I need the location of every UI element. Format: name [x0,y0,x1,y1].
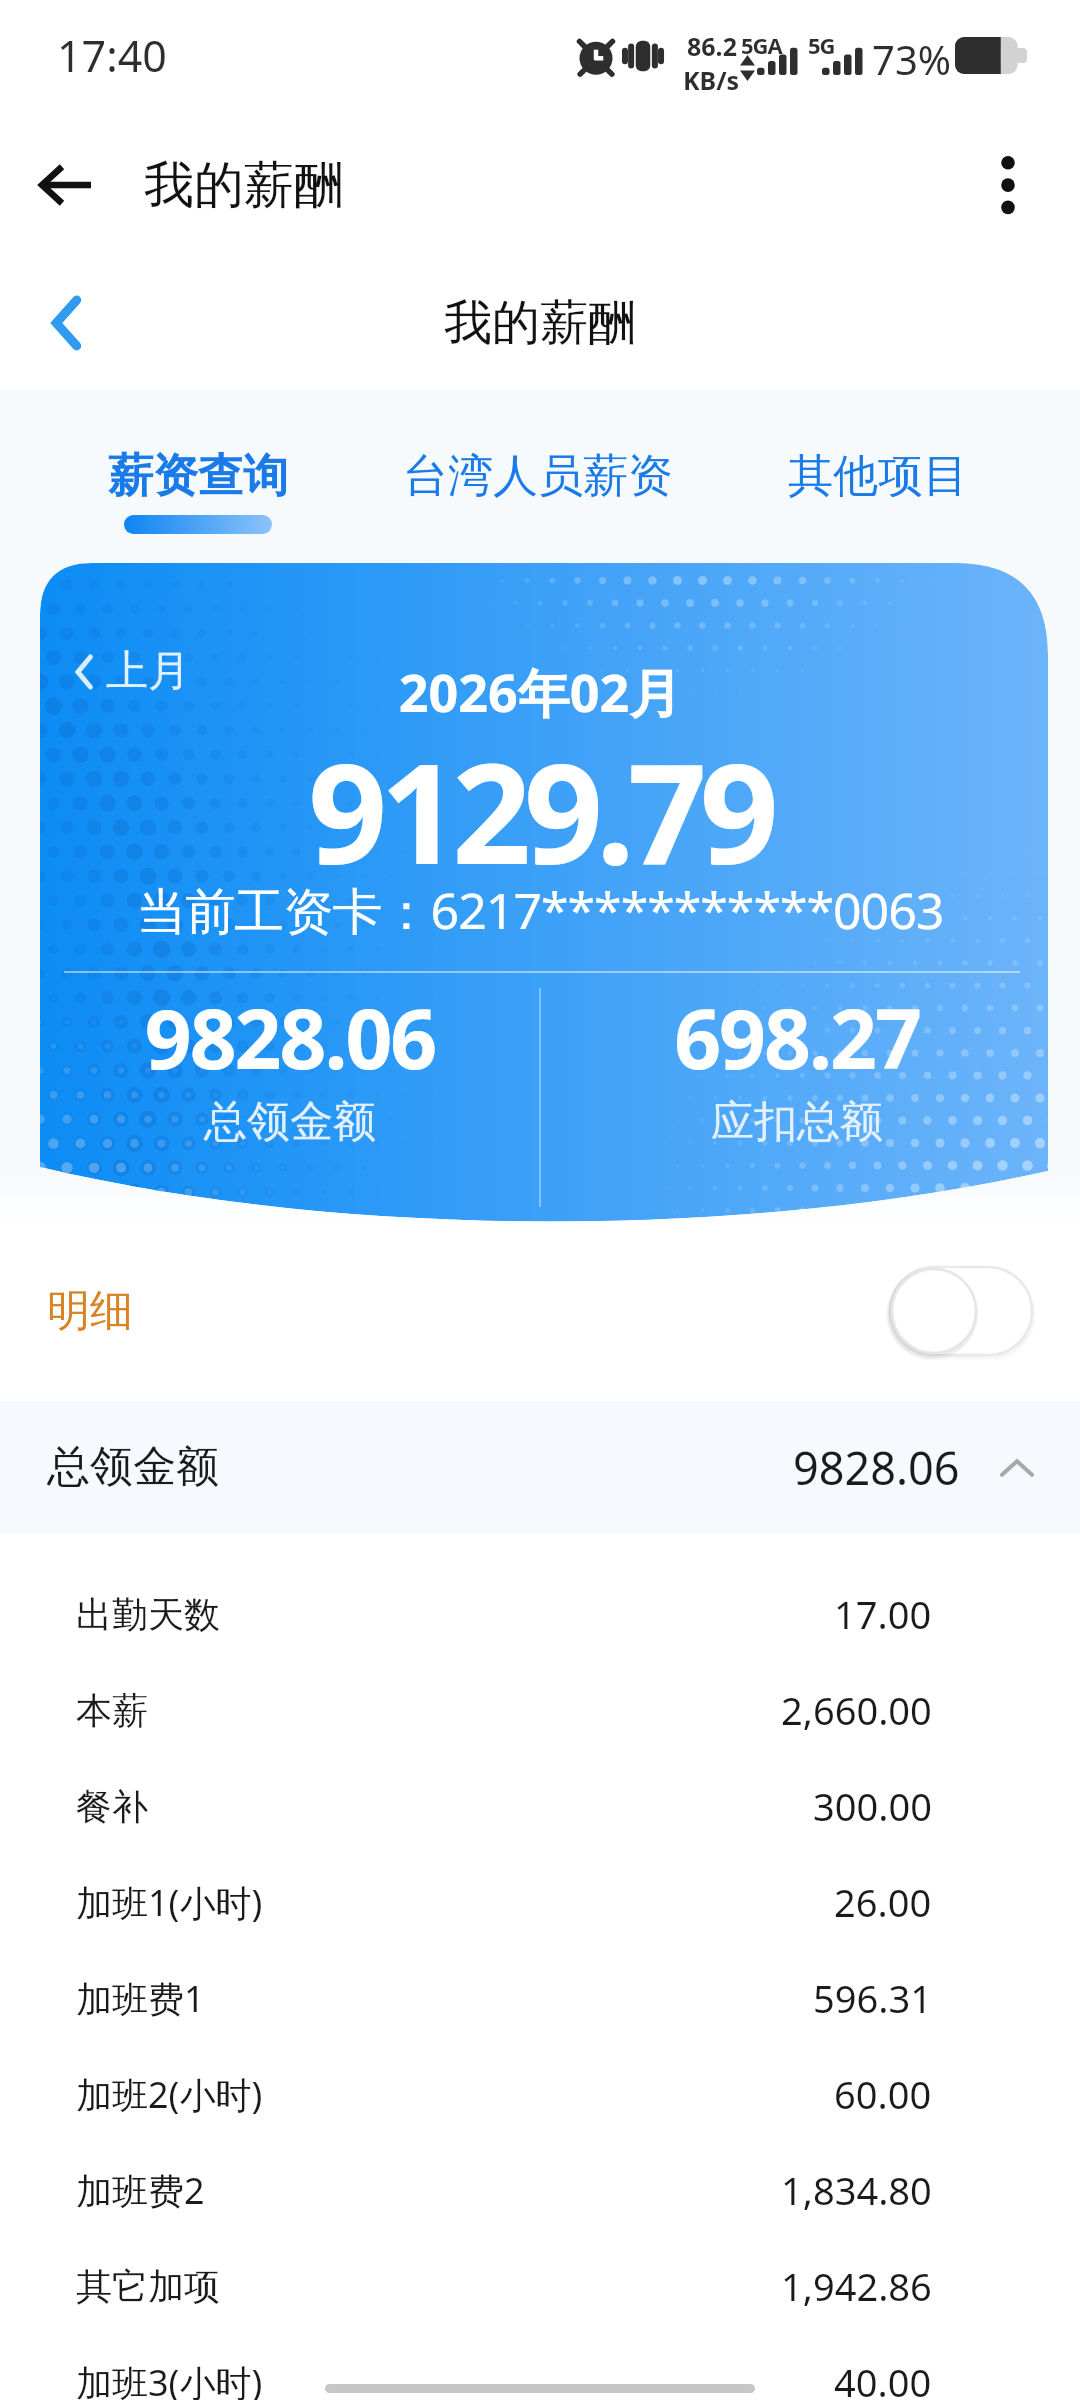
staticText: 5GA [741,30,782,60]
button[interactable]: 出勤天数 [0,1566,1080,1662]
staticText: 40.00 [834,2356,932,2400]
button[interactable]: 加班1(小时) [0,1854,1080,1950]
button[interactable]: 上月 [76,645,190,698]
staticText: 698.27 [540,981,1054,1093]
staticText: 17.00 [834,1588,932,1640]
staticText: 60.00 [834,2068,932,2120]
staticText: 596.31 [813,1972,932,2024]
staticText: 1,942.86 [781,2260,932,2312]
staticText: 17:40 [57,26,167,85]
staticText: 73% [872,32,951,86]
staticText: 300.00 [813,1780,932,1832]
staticText: 我的薪酬 [444,293,636,353]
staticText: 总领金额 [47,1440,219,1494]
staticText: 台湾人员薪资 [403,448,673,505]
staticText: 其他项目 [788,448,968,505]
button[interactable]: 加班费2 [0,2142,1080,2238]
staticText: 5G [808,30,835,60]
button[interactable]: More options [952,129,1064,241]
staticText: 加班1(小时) [76,1878,263,1927]
staticText: 出勤天数 [76,1592,220,1637]
staticText: 26.00 [834,1876,932,1928]
button[interactable]: 其它加项 [0,2238,1080,2334]
staticText: 我的薪酬 [144,154,344,217]
button[interactable]: 总领金额 [0,1401,1080,1533]
staticText: 86.2 [687,29,737,63]
button[interactable]: 餐补 [0,1758,1080,1854]
button[interactable]: 其他项目 [708,393,1048,515]
staticText: 薪资查询 [108,448,288,505]
button[interactable]: Back [16,273,116,373]
staticText: 9129.79 [0,716,1080,904]
staticText: KB/s [683,63,740,97]
staticText: 2,660.00 [781,1684,932,1736]
staticText: 应扣总额 [540,1095,1054,1149]
button[interactable]: 加班2(小时) [0,2046,1080,2142]
staticText: 9828.06 [793,1437,960,1498]
button[interactable]: 加班费1 [0,1950,1080,2046]
button[interactable]: 薪资查询 [28,393,368,534]
staticText: 加班2(小时) [76,2070,263,2119]
button[interactable]: Toggle details [890,1267,1032,1355]
staticText: 加班3(小时) [76,2358,263,2400]
staticText: 加班费1 [76,1974,205,2023]
staticText: 当前工资卡：6217***********0063 [0,876,1080,944]
staticText: 2026年02月 [0,656,1080,727]
staticText: 本薪 [76,1688,148,1733]
button[interactable]: 加班3(小时) [0,2334,1080,2400]
staticText: 明细 [47,1284,133,1338]
staticText: 总领金额 [40,1095,540,1149]
staticText: 餐补 [76,1784,148,1829]
staticText: 1,834.80 [781,2164,932,2216]
staticText: 9828.06 [40,981,540,1093]
button[interactable]: 台湾人员薪资 [368,393,708,515]
button[interactable]: Back [10,129,122,241]
button[interactable]: 本薪 [0,1662,1080,1758]
staticText: 上月 [106,645,190,698]
staticText: 加班费2 [76,2166,205,2215]
staticText: 其它加项 [76,2264,220,2309]
